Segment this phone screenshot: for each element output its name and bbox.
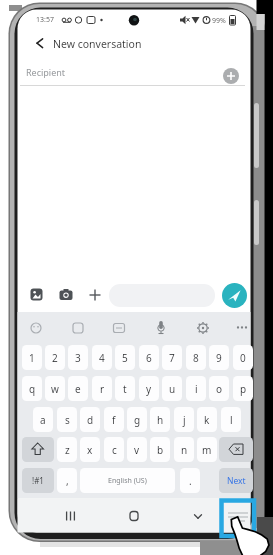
button[interactable]: v [127, 437, 147, 462]
staticText: 6 [146, 351, 152, 365]
button[interactable]: y [139, 376, 159, 401]
button[interactable]: x [80, 437, 100, 462]
staticText: 9 [216, 351, 222, 365]
button[interactable]: Next [219, 468, 253, 493]
staticText: Recipient [26, 66, 66, 78]
staticText: 7 [169, 351, 175, 365]
button[interactable]: 0 [233, 345, 253, 370]
staticText: w [51, 382, 59, 396]
staticText: i [195, 382, 198, 396]
button[interactable]: 2 [45, 345, 65, 370]
staticText: Next [227, 475, 246, 487]
staticText: f [112, 413, 116, 427]
button[interactable] [126, 508, 142, 524]
button[interactable]: 4 [92, 345, 112, 370]
staticText: 13:57 [36, 15, 54, 25]
button[interactable]: 9 [209, 345, 229, 370]
button[interactable]: b [150, 437, 170, 462]
button[interactable] [190, 508, 206, 524]
button[interactable]: , [57, 468, 77, 493]
staticText: 4 [99, 351, 105, 365]
staticText: g [134, 413, 141, 427]
button[interactable]: English (US) [80, 468, 175, 493]
button[interactable] [112, 321, 126, 335]
button[interactable]: u [162, 376, 182, 401]
button[interactable]: s [57, 407, 77, 432]
staticText: m [202, 443, 212, 457]
button[interactable] [196, 321, 210, 335]
button[interactable]: i [186, 376, 206, 401]
staticText: English (US) [108, 476, 147, 486]
button[interactable]: r [92, 376, 112, 401]
button[interactable]: p [233, 376, 253, 401]
button[interactable]: . [180, 468, 200, 493]
button[interactable]: t [115, 376, 135, 401]
staticText: k [204, 413, 210, 427]
staticText: 2 [52, 351, 58, 365]
staticText: j [183, 413, 186, 427]
button[interactable] [71, 321, 85, 335]
button[interactable]: 6 [139, 345, 159, 370]
staticText: . [189, 474, 192, 488]
button[interactable] [154, 320, 168, 335]
button[interactable]: 3 [68, 345, 88, 370]
button[interactable]: o [209, 376, 229, 401]
button[interactable]: e [68, 376, 88, 401]
button[interactable]: z [57, 437, 77, 462]
staticText: 0 [240, 351, 246, 365]
button[interactable]: 8 [186, 345, 206, 370]
button[interactable]: d [80, 407, 100, 432]
staticText: l [230, 413, 233, 427]
button[interactable]: j [174, 407, 194, 432]
button[interactable]: l [221, 407, 241, 432]
staticText: !#1 [32, 475, 44, 486]
button[interactable] [29, 321, 43, 335]
button[interactable] [59, 289, 73, 300]
button[interactable] [89, 289, 101, 301]
button[interactable]: 7 [162, 345, 182, 370]
button[interactable]: !#1 [22, 468, 54, 493]
button[interactable] [235, 321, 249, 334]
button[interactable] [22, 437, 54, 462]
button[interactable]: w [45, 376, 65, 401]
staticText: 99% [212, 16, 226, 26]
button[interactable] [223, 68, 239, 84]
button[interactable]: n [174, 437, 194, 462]
staticText: New conversation [53, 37, 142, 51]
button[interactable]: Recipient [18, 62, 218, 86]
staticText: 3 [75, 351, 81, 365]
button[interactable]: h [150, 407, 170, 432]
button[interactable]: q [22, 376, 42, 401]
button[interactable]: k [197, 407, 217, 432]
staticText: 8 [193, 351, 199, 365]
button[interactable]: f [104, 407, 124, 432]
button[interactable] [224, 503, 252, 534]
button[interactable] [62, 508, 79, 524]
button[interactable] [30, 288, 43, 301]
staticText: 5 [122, 351, 128, 365]
staticText: y [146, 382, 152, 396]
button[interactable]: a [33, 407, 53, 432]
button[interactable]: c [104, 437, 124, 462]
button[interactable] [30, 34, 48, 52]
button[interactable]: 5 [115, 345, 135, 370]
staticText: p [240, 382, 247, 396]
staticText: n [181, 443, 188, 457]
staticText: x [87, 443, 93, 457]
button[interactable] [219, 437, 253, 462]
staticText: d [87, 413, 94, 427]
staticText: z [65, 443, 70, 457]
staticText: , [66, 474, 69, 488]
button[interactable]: 1 [22, 345, 42, 370]
staticText: 1 [29, 351, 35, 365]
staticText: b [157, 443, 164, 457]
button[interactable]: m [197, 437, 217, 462]
staticText: r [100, 382, 105, 396]
button[interactable]: g [127, 407, 147, 432]
staticText: u [169, 382, 176, 396]
staticText: o [216, 382, 223, 396]
button[interactable] [222, 283, 247, 308]
staticText: c [112, 443, 117, 457]
staticText: q [29, 382, 36, 396]
